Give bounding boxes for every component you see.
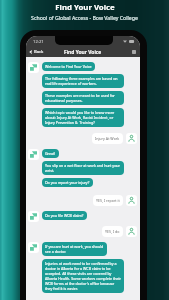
button[interactable]: Back — [26, 48, 46, 56]
button[interactable]: Do you file WCB claim? — [42, 211, 87, 220]
staticText: Injury At Work — [95, 136, 120, 141]
staticText: Do you report your injury? — [45, 180, 90, 185]
staticText: Welcome to Find Your Voice — [45, 64, 92, 69]
button[interactable]: Do you report your injury? — [42, 178, 93, 187]
button[interactable]: YES, I do — [102, 226, 123, 237]
staticText: Back — [34, 49, 44, 55]
staticText: Which topic would you like to know more … — [45, 110, 121, 125]
button[interactable]: These examples are meant to be used for … — [42, 91, 124, 105]
staticText: These examples are meant to be used for … — [45, 93, 121, 103]
button[interactable]: Great! — [42, 149, 59, 158]
staticText: The following three examples are based o… — [45, 76, 121, 86]
button[interactable]: Welcome to Find Your Voice — [42, 62, 95, 71]
button[interactable]: Injury At Work — [92, 133, 123, 144]
button[interactable]: Injuries at work need to be confirmed by… — [42, 259, 124, 293]
staticText: YES, I do — [105, 229, 120, 234]
staticText: You slip on a wet floor at work and hurt… — [45, 163, 121, 173]
staticText: Find Your Voice — [64, 49, 102, 56]
staticText: YES, I report it — [96, 198, 120, 203]
staticText: If you are hurt at work, you should see … — [45, 244, 104, 254]
staticText: Injuries at work need to be confirmed by… — [45, 261, 121, 291]
button[interactable]: Which topic would you like to know more … — [42, 108, 124, 127]
staticText: Do you file WCB claim? — [45, 213, 84, 218]
button[interactable]: You slip on a wet floor at work and hurt… — [42, 161, 124, 175]
staticText: 12:21 — [33, 39, 44, 45]
button[interactable]: If you are hurt at work, you should see … — [42, 242, 107, 256]
staticText: Great! — [45, 151, 56, 156]
button[interactable]: Menu — [132, 50, 136, 54]
button[interactable]: The following three examples are based o… — [42, 74, 124, 88]
button[interactable]: YES, I report it — [93, 195, 123, 206]
staticText: Find Your Voice — [55, 2, 115, 13]
staticText: School of Global Access - Bow Valley Col… — [31, 14, 138, 21]
